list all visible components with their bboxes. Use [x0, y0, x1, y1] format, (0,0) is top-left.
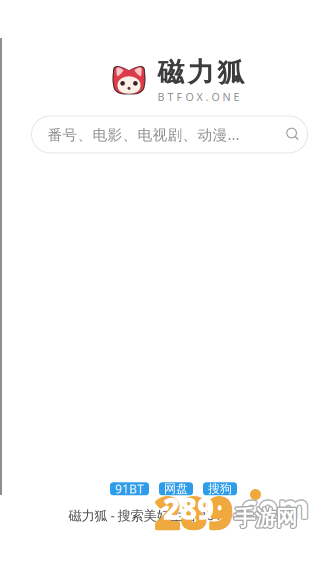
staticText: 番号、电影、电视剧、动漫... — [47, 125, 239, 144]
staticText: 搜狗 — [208, 481, 232, 496]
staticText: B T F O X . O N E — [157, 90, 239, 104]
staticText: 磁力狐 — [157, 56, 244, 89]
staticText: 289 — [154, 484, 232, 542]
staticText: 手游网 — [234, 506, 297, 532]
button[interactable]: 搜狗 — [203, 482, 237, 495]
button[interactable]: 番号、电影、电视剧、动漫... — [31, 116, 307, 153]
staticText: .com — [232, 486, 309, 529]
staticText: 手游网 — [233, 506, 296, 532]
button[interactable]: 网盘 — [159, 482, 193, 495]
staticText: 289 — [154, 483, 232, 541]
staticText: 289 — [156, 484, 234, 542]
staticText: 手游网 — [234, 504, 297, 530]
staticText: 289 — [154, 482, 232, 541]
staticText: .com — [233, 485, 310, 527]
staticText: .com — [233, 484, 310, 527]
staticText: .com — [231, 486, 308, 528]
staticText: 网盘 — [164, 481, 188, 496]
staticText: .com — [232, 484, 309, 526]
staticText: 手游网 — [233, 505, 296, 531]
staticText: 磁力狐 - 搜索美好生活 2019 — [68, 506, 230, 524]
staticText: 289 — [155, 482, 233, 540]
staticText: .com — [232, 485, 309, 527]
staticText: 手游网 — [235, 506, 298, 532]
staticText: .com — [231, 484, 308, 527]
staticText: 289 — [156, 483, 234, 541]
staticText: 手游网 — [235, 505, 298, 531]
staticText: .com — [231, 485, 308, 527]
staticText: 289 — [155, 483, 233, 541]
staticText: 手游网 — [233, 504, 296, 530]
staticText: 手游网 — [234, 505, 297, 531]
staticText: 289 — [155, 484, 233, 542]
staticText: .com — [233, 486, 310, 528]
staticText: 91BT — [115, 481, 144, 497]
button[interactable]: 91BT — [110, 482, 149, 495]
staticText: 289 — [163, 489, 214, 528]
staticText: 手游网 — [235, 504, 298, 530]
staticText: 289 — [156, 482, 234, 541]
